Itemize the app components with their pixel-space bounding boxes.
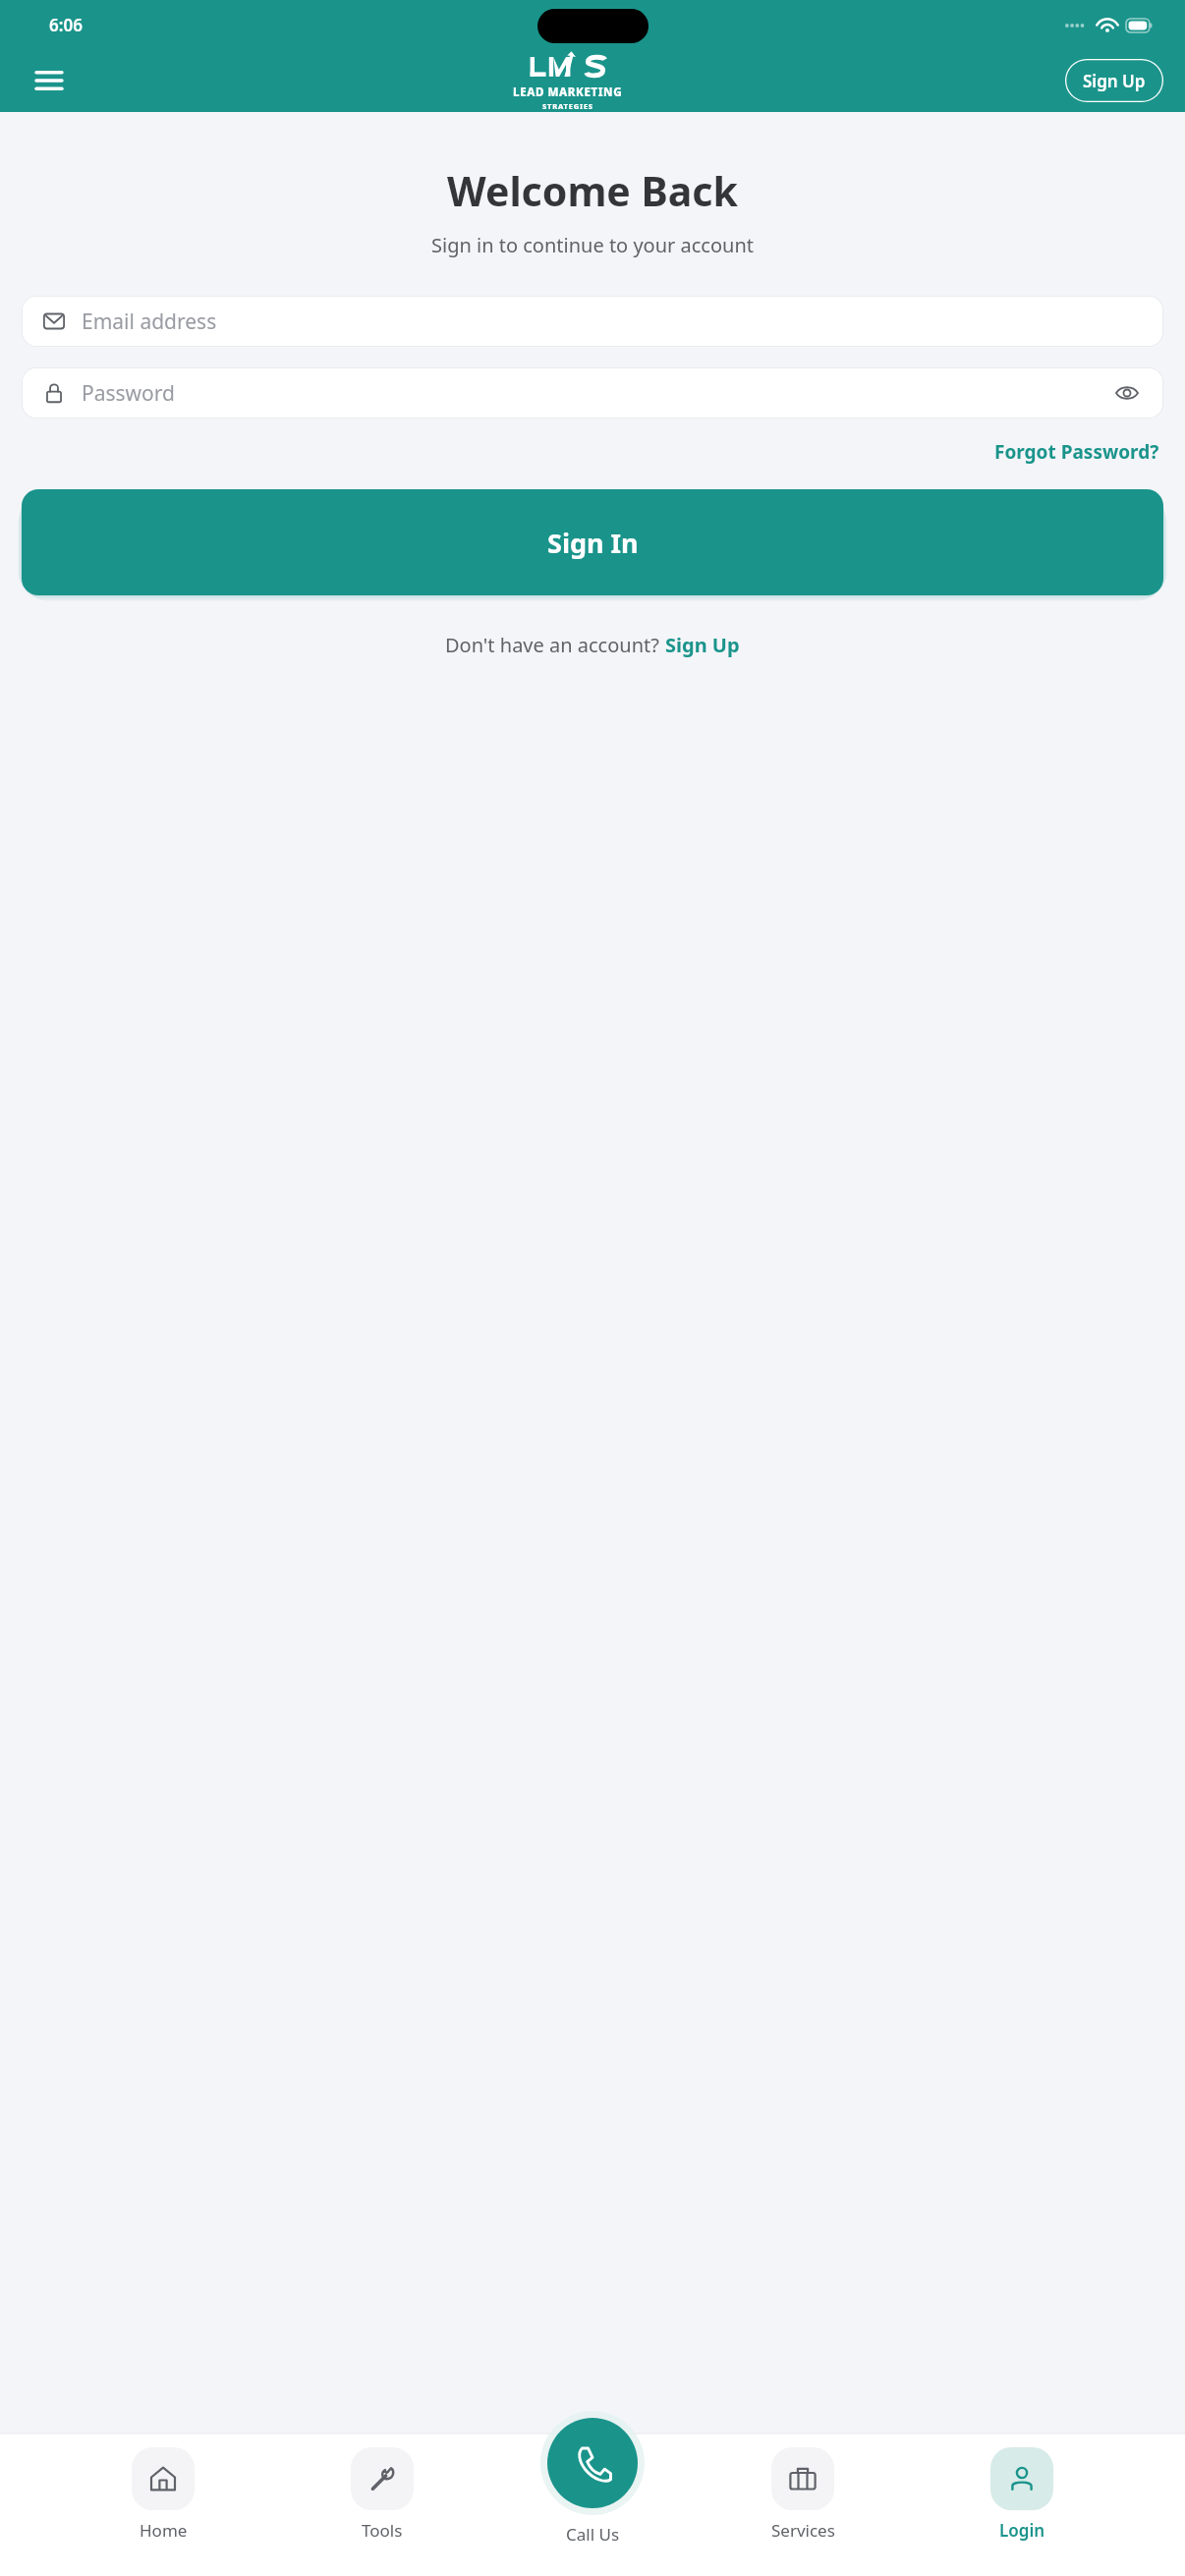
button[interactable]: Forgot Password? (990, 435, 1163, 469)
staticText: Tools (362, 2519, 403, 2542)
button[interactable]: Don't have an account? (439, 628, 746, 662)
staticText: Sign in to continue to your account (431, 232, 754, 258)
button[interactable]: Sign In (22, 489, 1163, 595)
staticText: Sign In (547, 525, 639, 561)
staticText: Home (140, 2519, 188, 2542)
button[interactable]: Services (748, 2434, 858, 2542)
button[interactable]: Email address (22, 296, 1163, 347)
staticText: Login (999, 2519, 1045, 2542)
staticText: STRATEGIES (542, 101, 593, 111)
staticText: Email address (82, 308, 217, 336)
button[interactable]: Call Us (547, 2418, 638, 2508)
button[interactable]: Login (967, 2434, 1077, 2542)
staticText: Sign Up (1083, 70, 1146, 92)
staticText: Password (82, 379, 175, 408)
staticText: 6:06 (49, 14, 83, 36)
button[interactable]: Tools (327, 2434, 437, 2542)
staticText: LEAD MARKETING (513, 84, 623, 100)
button[interactable]: Show password (1110, 376, 1144, 410)
staticText: Sign Up (665, 632, 740, 658)
staticText: Forgot Password? (994, 439, 1159, 465)
button[interactable]: Password (22, 367, 1163, 419)
staticText: Welcome Back (447, 163, 738, 218)
staticText: Don't have an account? (445, 632, 665, 658)
button[interactable]: Menu (28, 59, 71, 102)
staticText: Services (771, 2519, 835, 2542)
staticText: Call Us (566, 2523, 620, 2546)
button[interactable]: Home (108, 2434, 218, 2542)
button[interactable]: Sign Up (1065, 59, 1163, 102)
